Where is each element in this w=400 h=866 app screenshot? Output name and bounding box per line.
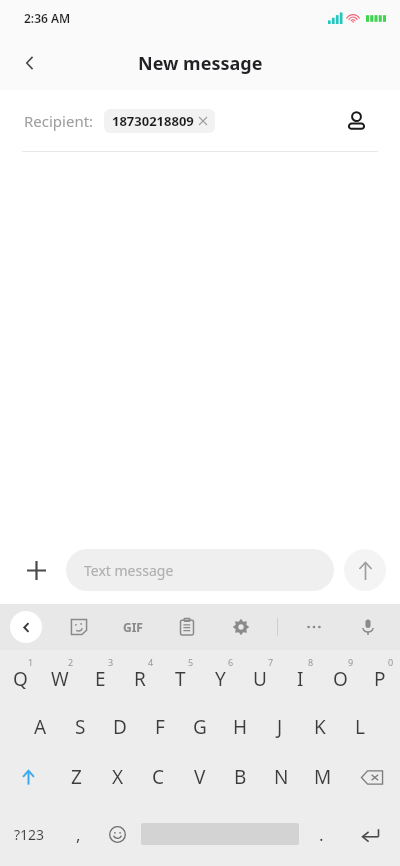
button[interactable]: W <box>40 650 80 702</box>
button[interactable]: ?123 <box>0 802 59 866</box>
staticText: K <box>314 714 326 740</box>
button[interactable]: Backspace <box>343 752 400 802</box>
staticText: O <box>333 666 348 692</box>
button[interactable]: B <box>220 752 261 802</box>
staticText: 3 <box>108 656 114 668</box>
button[interactable]: Z <box>56 752 97 802</box>
button[interactable]: , <box>59 802 98 866</box>
staticText: V <box>194 764 206 790</box>
staticText: 7 <box>268 656 274 668</box>
staticText: Text message <box>84 561 174 580</box>
button[interactable]: M <box>302 752 343 802</box>
button[interactable]: P <box>360 650 400 702</box>
staticText: C <box>152 764 165 790</box>
staticText: 9 <box>348 656 354 668</box>
button[interactable]: Q <box>0 650 40 702</box>
staticText: T <box>175 666 186 692</box>
staticText: U <box>253 666 267 692</box>
button[interactable]: Send <box>344 549 386 591</box>
button[interactable]: C <box>138 752 179 802</box>
button[interactable]: U <box>240 650 280 702</box>
button[interactable]: S <box>60 702 100 752</box>
staticText: H <box>233 714 248 740</box>
button[interactable]: K <box>300 702 340 752</box>
button[interactable]: L <box>340 702 380 752</box>
staticText: J <box>277 714 283 740</box>
button[interactable]: More options <box>296 609 332 645</box>
button[interactable]: Text message <box>66 549 334 591</box>
staticText: P <box>374 666 386 692</box>
button[interactable]: A <box>20 702 60 752</box>
button[interactable]: Y <box>200 650 240 702</box>
staticText: Y <box>215 666 226 692</box>
staticText: S <box>75 714 86 740</box>
button[interactable]: V <box>179 752 220 802</box>
button[interactable]: Contacts <box>336 101 376 141</box>
button[interactable]: D <box>100 702 140 752</box>
button[interactable]: Clipboard <box>169 609 205 645</box>
staticText: 5 <box>188 656 194 668</box>
button[interactable]: Settings <box>223 609 259 645</box>
staticText: 8 <box>308 656 314 668</box>
staticText: , <box>76 823 81 846</box>
button[interactable]: O <box>320 650 360 702</box>
button[interactable]: Space <box>137 802 302 866</box>
staticText: E <box>95 666 106 692</box>
button[interactable]: N <box>261 752 302 802</box>
button[interactable]: F <box>140 702 180 752</box>
staticText: GIF <box>123 619 143 635</box>
button[interactable]: Enter <box>341 802 400 866</box>
button[interactable]: X <box>97 752 138 802</box>
staticText: Recipient: <box>24 111 94 131</box>
staticText: 2:36 AM <box>24 10 71 26</box>
staticText: G <box>193 714 207 740</box>
staticText: Q <box>13 666 28 692</box>
staticText: X <box>112 764 124 790</box>
button[interactable]: R <box>120 650 160 702</box>
staticText: 18730218809 <box>112 112 194 130</box>
button[interactable]: 18730218809 <box>104 109 215 133</box>
button[interactable]: Emoji <box>98 802 137 866</box>
staticText: ?123 <box>14 825 45 844</box>
staticText: B <box>234 764 247 790</box>
staticText: F <box>155 714 165 740</box>
button[interactable]: E <box>80 650 120 702</box>
button[interactable]: . <box>302 802 341 866</box>
button[interactable]: Shift <box>0 752 56 802</box>
button[interactable]: I <box>280 650 320 702</box>
staticText: N <box>274 764 289 790</box>
button[interactable]: Back <box>10 611 42 643</box>
button[interactable]: GIF <box>115 609 151 645</box>
staticText: W <box>51 666 69 692</box>
staticText: R <box>134 666 146 692</box>
button[interactable]: Add attachment <box>14 548 58 592</box>
staticText: 1 <box>28 656 34 668</box>
staticText: L <box>355 714 365 740</box>
button[interactable]: T <box>160 650 200 702</box>
staticText: 2 <box>68 656 74 668</box>
button[interactable]: Stickers <box>61 609 97 645</box>
staticText: Z <box>71 764 82 790</box>
button[interactable]: Voice input <box>350 609 386 645</box>
button[interactable]: G <box>180 702 220 752</box>
staticText: A <box>34 714 47 740</box>
staticText: 6 <box>228 656 234 668</box>
button[interactable]: Back <box>8 41 52 85</box>
button[interactable]: H <box>220 702 260 752</box>
staticText: . <box>319 823 324 846</box>
staticText: 0 <box>388 656 394 668</box>
staticText: M <box>314 764 332 790</box>
staticText: I <box>297 666 304 692</box>
staticText: D <box>113 714 127 740</box>
staticText: New message <box>138 51 263 76</box>
staticText: 4 <box>148 656 154 668</box>
button[interactable]: J <box>260 702 300 752</box>
